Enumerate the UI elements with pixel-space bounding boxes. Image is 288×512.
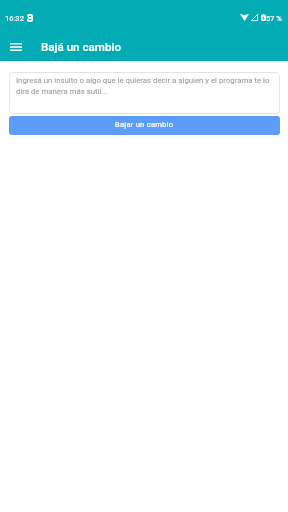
button[interactable]: Open navigation drawer (3, 34, 29, 60)
staticText: Bajá un cambio (41, 40, 121, 54)
staticText: 16:32 (5, 14, 24, 23)
staticText: Ingresá un insulto o algo que le quieras… (16, 76, 272, 95)
staticText: 57 % (266, 14, 282, 23)
staticText: Bajar un cambio (115, 120, 174, 129)
button[interactable]: Ingresá un insulto o algo que le quieras… (9, 72, 280, 114)
button[interactable]: Bajar un cambio (9, 116, 280, 135)
